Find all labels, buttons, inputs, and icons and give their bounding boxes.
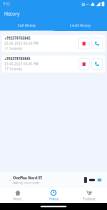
staticText: 4G xyxy=(86,2,89,6)
button[interactable]: Credit History xyxy=(53,20,107,31)
staticText: History xyxy=(49,197,58,201)
staticText: 20-06-2023 06:45 PM xyxy=(4,62,38,66)
button[interactable]: Purchase xyxy=(71,188,107,203)
staticText: Starting from ₹19,999* xyxy=(13,181,39,184)
staticText: Home xyxy=(13,197,22,201)
button[interactable]: Call back xyxy=(91,58,102,69)
staticText: Credit History xyxy=(70,23,91,28)
staticText: 51 Seconds xyxy=(4,47,21,51)
staticText: Ad xyxy=(9,178,11,181)
button[interactable]: Call back xyxy=(91,38,102,49)
staticText: OnePlus Nord 3T xyxy=(13,175,42,180)
button[interactable]: OnePlus Nord 3T advertisement xyxy=(0,172,107,188)
staticText: History xyxy=(4,11,19,17)
staticText: 20-06-2023 06:50 PM xyxy=(4,42,38,46)
button[interactable]: Delete call record xyxy=(78,38,89,49)
staticText: 77 Seconds xyxy=(4,67,21,71)
staticText: +992378765845 xyxy=(4,57,30,61)
button[interactable]: History xyxy=(36,188,71,203)
button[interactable]: Call History xyxy=(0,20,53,31)
staticText: Call History xyxy=(18,23,36,28)
button[interactable]: Home xyxy=(0,188,36,203)
staticText: 9:52 xyxy=(3,2,10,6)
button[interactable]: Delete call record xyxy=(78,58,89,69)
staticText: +992378765845 xyxy=(4,36,30,40)
staticText: Purchase xyxy=(83,197,96,201)
